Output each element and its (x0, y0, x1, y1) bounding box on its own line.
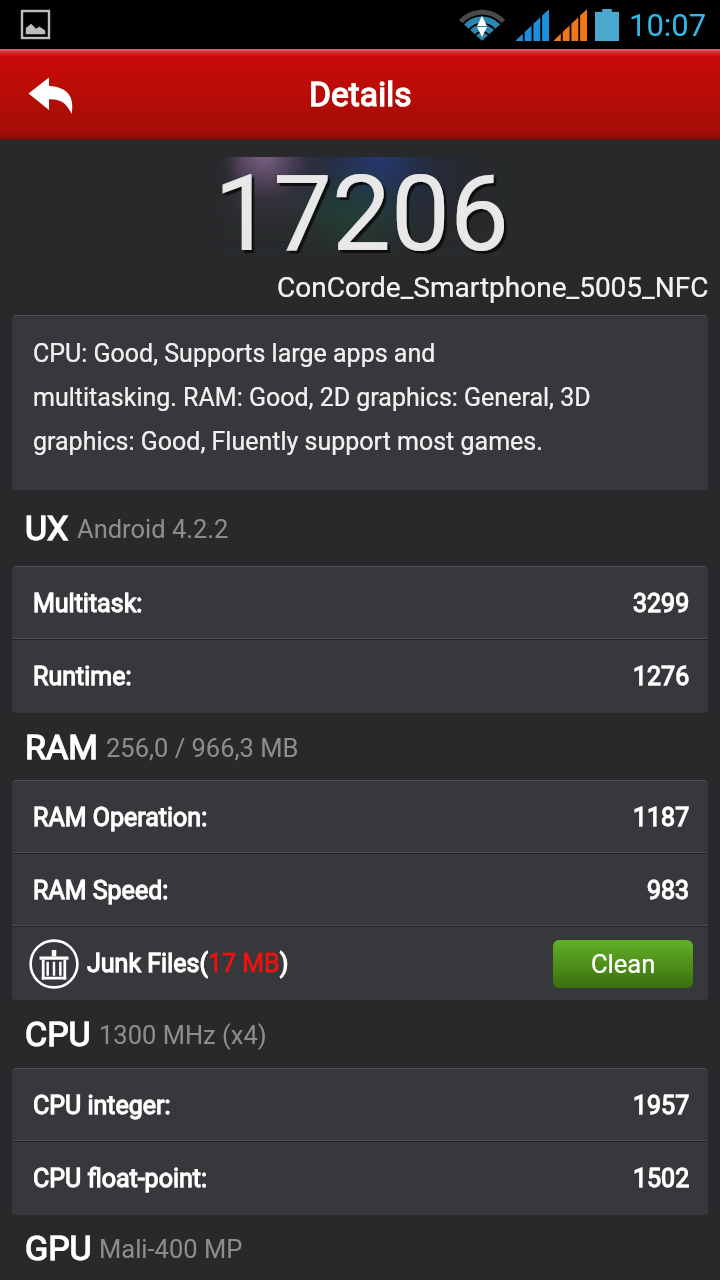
staticText: CPU float-point: (33, 1164, 208, 1193)
staticText: Multitask: (33, 589, 143, 618)
staticText: CPU integer: (33, 1091, 171, 1120)
staticText: Runtime: (33, 662, 132, 691)
button[interactable]: RAM Operation: (12, 781, 708, 854)
staticText: 1187 (633, 803, 690, 832)
staticText: Mali-400 MP (99, 1234, 243, 1264)
staticText: 1502 (633, 1164, 690, 1193)
staticText: Android 4.2.2 (77, 514, 229, 544)
staticText: 1300 MHz (x4) (99, 1020, 267, 1050)
staticText: 17206 (217, 156, 513, 279)
staticText: RAM (25, 727, 98, 767)
button[interactable]: Multitask: (12, 567, 708, 640)
staticText: UX (25, 508, 69, 548)
staticText: 17206 (214, 153, 510, 276)
staticText: 1276 (633, 662, 690, 691)
button[interactable]: CPU integer: (12, 1069, 708, 1142)
staticText: Details (309, 75, 412, 114)
staticText: Junk Files(17 MB) (87, 949, 289, 978)
button[interactable]: Runtime: (12, 640, 708, 713)
button[interactable]: Back (26, 70, 76, 120)
staticText: 256,0 / 966,3 MB (106, 733, 299, 763)
staticText: RAM Speed: (33, 876, 169, 905)
staticText: 983 (647, 876, 690, 905)
button[interactable]: Junk Files(17 MB) (12, 927, 708, 1000)
staticText: CPU: Good, Supports large apps and multi… (33, 339, 591, 456)
staticText: RAM Operation: (33, 803, 208, 832)
staticText: 1957 (633, 1091, 690, 1120)
staticText: GPU (25, 1228, 92, 1268)
button[interactable]: Clean (553, 940, 693, 988)
staticText: CPU (25, 1014, 91, 1054)
staticText: 3299 (633, 589, 690, 618)
staticText: 10:07 (629, 7, 707, 43)
button[interactable]: CPU float-point: (12, 1142, 708, 1215)
staticText: ConCorde_Smartphone_5005_NFC (277, 271, 709, 304)
staticText: Clean (591, 949, 656, 979)
button[interactable]: RAM Speed: (12, 854, 708, 927)
